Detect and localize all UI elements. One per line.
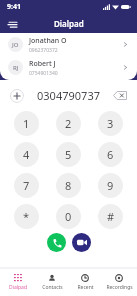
button[interactable]: Recordings: [103, 274, 135, 291]
staticText: 0962370372: [29, 47, 58, 54]
staticText: *: [23, 209, 30, 224]
staticText: 4: [23, 147, 30, 162]
staticText: #: [107, 209, 115, 224]
staticText: Recordings: [106, 284, 133, 291]
staticText: 7: [23, 178, 30, 193]
staticText: Recent: [77, 284, 94, 291]
button[interactable]: 2: [56, 111, 81, 136]
staticText: 9:41: [7, 2, 21, 12]
button[interactable]: Video call: [72, 233, 91, 252]
staticText: 1: [23, 116, 30, 131]
staticText: JO: [12, 41, 19, 49]
button[interactable]: Call: [47, 233, 66, 252]
button[interactable]: 7: [14, 173, 39, 198]
button[interactable]: 6: [98, 142, 123, 167]
button[interactable]: 5: [56, 142, 81, 167]
staticText: Contacts: [42, 284, 63, 291]
staticText: 2: [65, 116, 72, 131]
staticText: Dialpad: [9, 284, 27, 291]
button[interactable]: 8: [56, 173, 81, 198]
staticText: 0304790737: [37, 88, 100, 103]
button[interactable]: 4: [14, 142, 39, 167]
button[interactable]: Backspace: [112, 90, 128, 101]
staticText: 3: [107, 116, 114, 131]
button[interactable]: 9: [98, 173, 123, 198]
button[interactable]: Dialpad: [2, 274, 34, 291]
staticText: 5: [65, 147, 72, 162]
staticText: Robert J: [29, 59, 56, 69]
button[interactable]: *: [14, 204, 39, 229]
staticText: 0: [65, 209, 72, 224]
staticText: 9: [107, 178, 114, 193]
button[interactable]: Recent: [69, 274, 101, 291]
staticText: Dialpad: [54, 18, 84, 29]
button[interactable]: 0: [56, 204, 81, 229]
button[interactable]: #: [98, 204, 123, 229]
button[interactable]: 1: [14, 111, 39, 136]
staticText: 8: [65, 178, 72, 193]
button[interactable]: 3: [98, 111, 123, 136]
button[interactable]: RJ: [0, 56, 137, 79]
staticText: RJ: [13, 64, 19, 72]
button[interactable]: Menu: [4, 16, 20, 32]
staticText: 6: [107, 147, 114, 162]
button[interactable]: Contacts: [36, 274, 68, 291]
staticText: Jonathan O: [29, 36, 67, 46]
button[interactable]: Add contact: [9, 88, 24, 103]
button[interactable]: JO: [0, 33, 137, 56]
staticText: 0754901340: [29, 70, 58, 77]
